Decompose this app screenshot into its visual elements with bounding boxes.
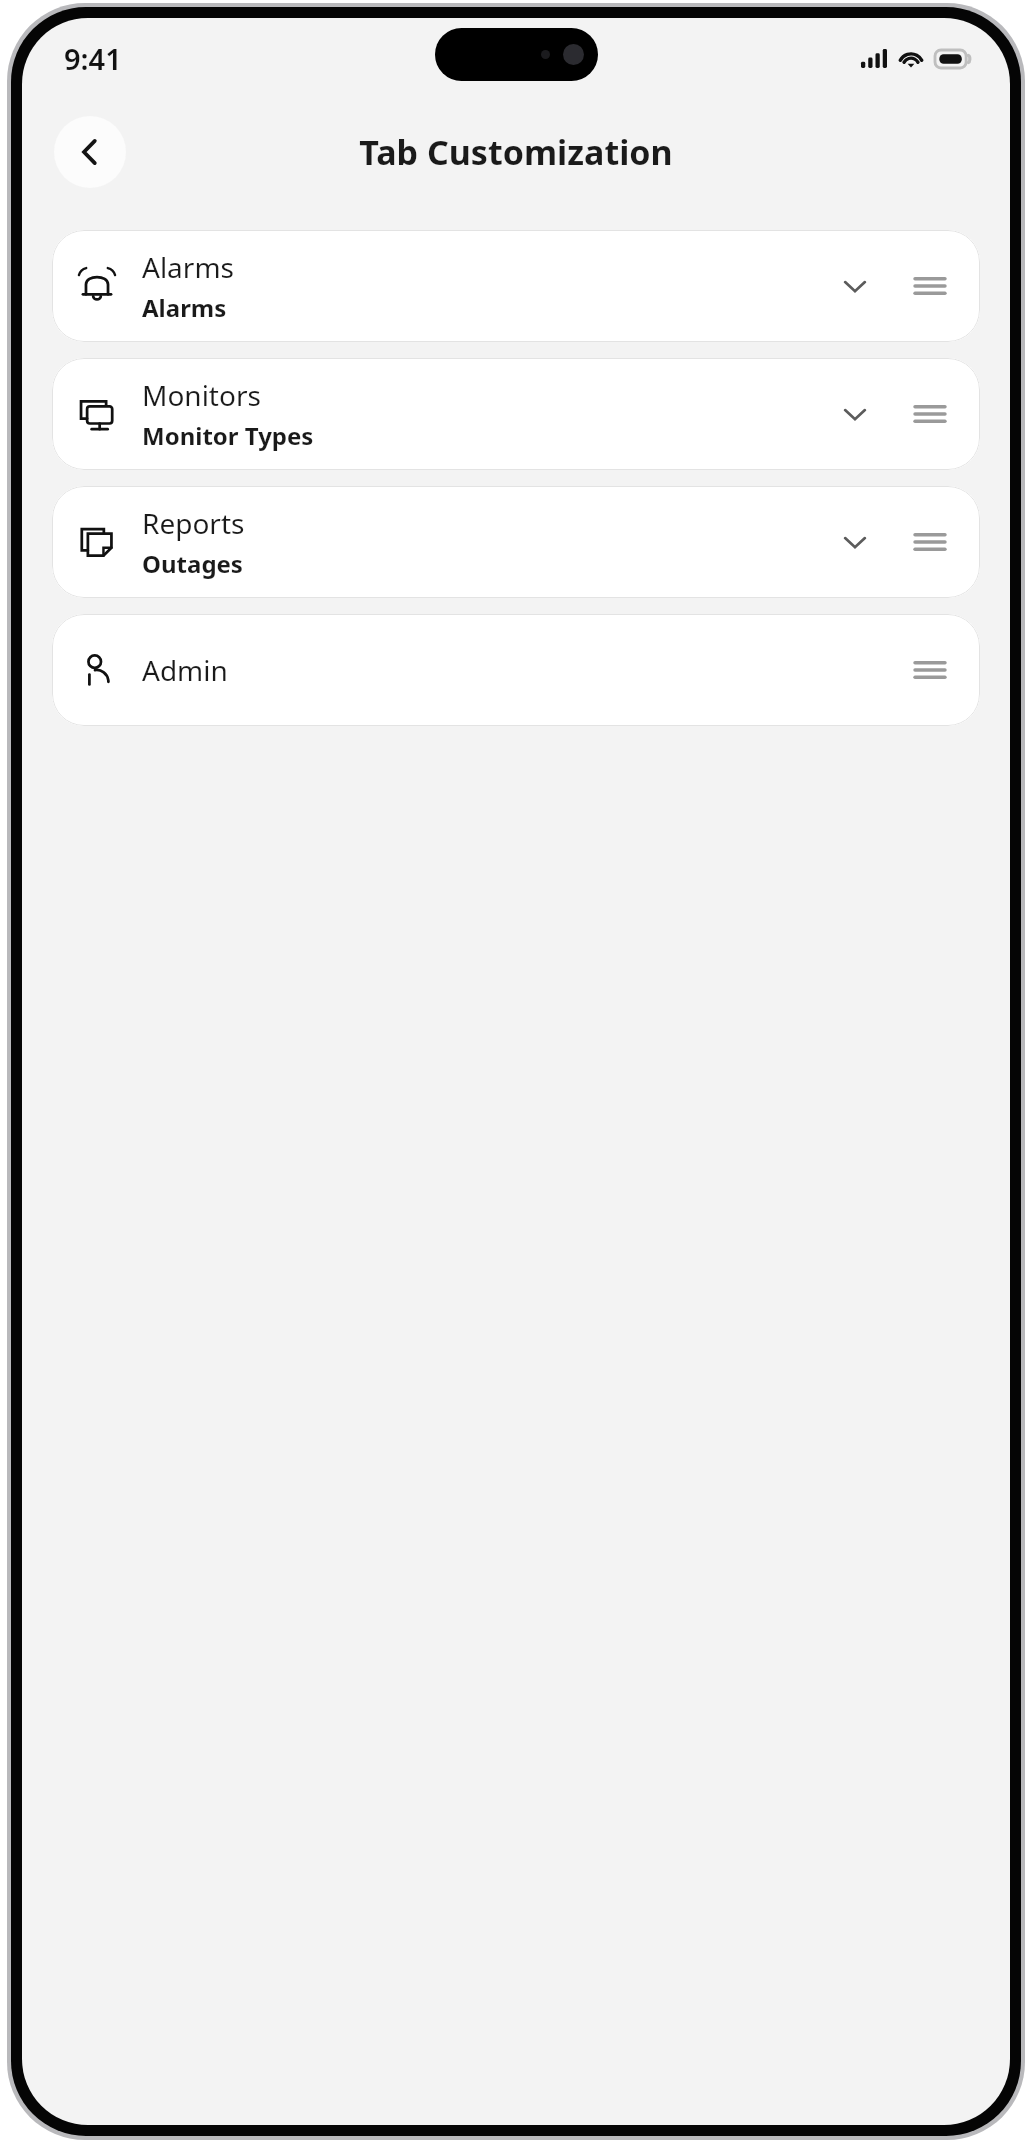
button[interactable]: Reorder [906, 262, 954, 310]
staticText: Admin [142, 651, 228, 689]
button[interactable]: Expand [828, 387, 882, 441]
button[interactable]: Reorder [906, 646, 954, 694]
staticText: Monitors [142, 376, 261, 414]
button[interactable]: Expand [828, 515, 882, 569]
button[interactable]: Admin [52, 614, 980, 726]
button[interactable]: Reports [52, 486, 980, 598]
staticText: 9:41 [64, 39, 122, 78]
button[interactable]: Reorder [906, 518, 954, 566]
staticText: Reports [142, 504, 245, 542]
button[interactable]: Alarms [52, 230, 980, 342]
button[interactable]: Back [54, 116, 126, 188]
staticText: Alarms [142, 291, 227, 324]
button[interactable]: Monitors [52, 358, 980, 470]
staticText: Outages [142, 547, 243, 580]
button[interactable]: Reorder [906, 390, 954, 438]
button[interactable]: Expand [828, 259, 882, 313]
staticText: Monitor Types [142, 419, 314, 452]
staticText: Alarms [142, 248, 234, 286]
staticText: Tab Customization [359, 129, 673, 175]
